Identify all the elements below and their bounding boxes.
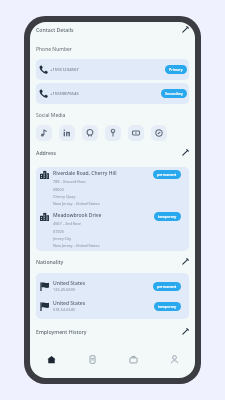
staticText: Riverdale Road, Cherry Hill bbox=[53, 170, 117, 177]
button[interactable]: Address bbox=[30, 148, 195, 157]
button[interactable]: Riverdale Road, Cherry Hill bbox=[36, 169, 189, 207]
staticText: permanent bbox=[157, 284, 177, 289]
button[interactable]: Secondary bbox=[161, 89, 187, 98]
button[interactable]: temporary bbox=[154, 302, 181, 311]
button[interactable]: permanent bbox=[153, 170, 181, 179]
button[interactable]: permanent bbox=[153, 282, 181, 291]
button[interactable]: Nationality bbox=[30, 257, 195, 266]
staticText: 123-45-6699 bbox=[53, 287, 75, 292]
button[interactable]: Edit Contact Details bbox=[181, 25, 190, 34]
button[interactable]: GitHub bbox=[82, 125, 98, 141]
staticText: Employment History bbox=[36, 328, 87, 335]
button[interactable]: Twitter bbox=[105, 125, 121, 141]
staticText: +15551234567 bbox=[50, 67, 79, 73]
staticText: 678-54-6543 bbox=[53, 307, 75, 312]
button[interactable]: Edit Nationality bbox=[181, 257, 190, 266]
staticText: Meadowbrook Drive bbox=[53, 212, 102, 219]
staticText: Primary bbox=[169, 67, 183, 72]
staticText: temporary bbox=[158, 304, 177, 309]
button[interactable]: Edit Employment History bbox=[181, 327, 190, 336]
staticText: 789 - Ground floor 08002 Cherry Quay New… bbox=[53, 179, 100, 206]
staticText: temporary bbox=[158, 214, 177, 219]
staticText: Social Media bbox=[36, 112, 66, 119]
button[interactable]: temporary bbox=[154, 212, 181, 221]
staticText: United States bbox=[53, 280, 86, 287]
staticText: Nationality bbox=[36, 258, 64, 265]
staticText: +15559876543 bbox=[50, 91, 79, 97]
button[interactable]: +15551234567 bbox=[36, 59, 189, 80]
button[interactable]: Employment History bbox=[30, 327, 195, 336]
button[interactable]: +15559876543 bbox=[36, 83, 189, 104]
staticText: Secondary bbox=[165, 91, 183, 96]
button[interactable]: Contact Details bbox=[30, 25, 195, 34]
button[interactable]: United States bbox=[36, 299, 189, 313]
staticText: Phone Number bbox=[36, 46, 72, 53]
staticText: 4567 - 2nd floor 07305 Jersey City New J… bbox=[53, 221, 100, 248]
button[interactable]: Edit Address bbox=[181, 148, 190, 157]
button[interactable]: TikTok bbox=[36, 125, 52, 141]
button[interactable]: Work bbox=[113, 348, 154, 370]
button[interactable]: Home bbox=[30, 348, 72, 370]
button[interactable]: Documents bbox=[72, 348, 113, 370]
button[interactable]: Profile bbox=[154, 348, 195, 370]
staticText: permanent bbox=[157, 172, 177, 177]
button[interactable]: United States bbox=[36, 279, 189, 293]
staticText: United States bbox=[53, 300, 86, 307]
staticText: Address bbox=[36, 149, 56, 156]
button[interactable]: Primary bbox=[165, 65, 187, 74]
button[interactable]: LinkedIn bbox=[59, 125, 75, 141]
staticText: Contact Details bbox=[36, 26, 74, 33]
button[interactable]: Meadowbrook Drive bbox=[36, 211, 189, 249]
button[interactable]: Skype bbox=[151, 125, 167, 141]
button[interactable]: YouTube bbox=[128, 125, 144, 141]
